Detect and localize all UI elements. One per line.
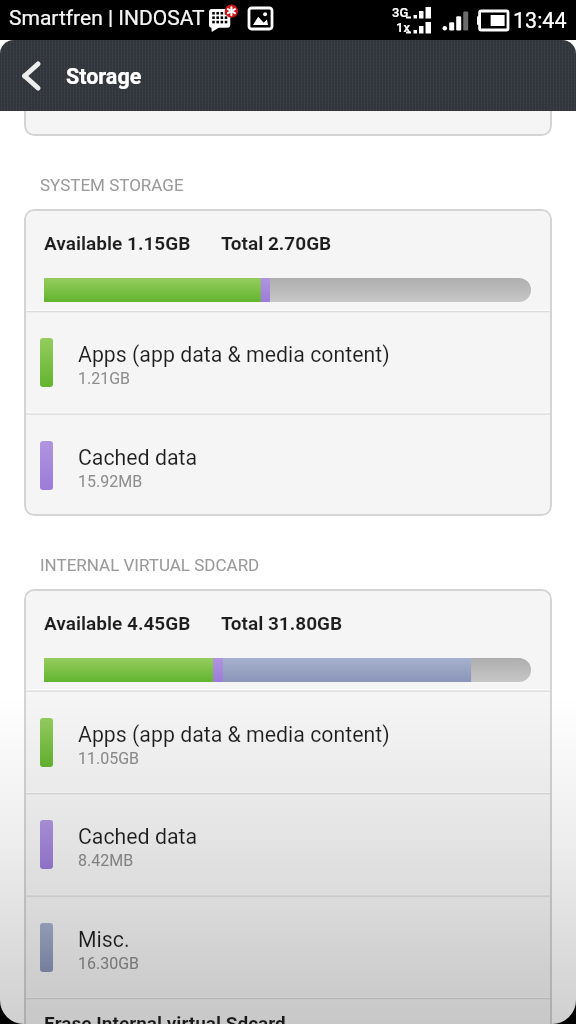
button[interactable]: Apps (app data & media content) [24, 691, 552, 794]
staticText: Available 1.15GB [44, 232, 191, 254]
staticText: INTERNAL VIRTUAL SDCARD [40, 555, 260, 575]
staticText: 1.21GB [78, 369, 131, 388]
staticText: SYSTEM STORAGE [40, 175, 184, 195]
button[interactable]: Cached data [24, 414, 552, 516]
staticText: Misc. [78, 927, 130, 952]
staticText: Smartfren | INDOSAT [9, 6, 205, 31]
staticText: 3G [392, 5, 409, 20]
staticText: 13:44 [513, 8, 567, 33]
button[interactable]: Misc. [24, 896, 552, 999]
staticText: Cached data [78, 824, 198, 849]
staticText: 8.42MB [78, 851, 134, 870]
staticText: Apps (app data & media content) [78, 722, 390, 747]
button[interactable]: Apps (app data & media content) [24, 311, 552, 414]
staticText: Erase Internal virtual Sdcard [44, 1012, 286, 1024]
staticText: 16.30GB [78, 954, 140, 973]
staticText: 15.92MB [78, 472, 143, 491]
staticText: Total 2.70GB [221, 232, 332, 254]
staticText: Available 4.45GB [44, 612, 191, 634]
staticText: Cached data [78, 445, 198, 470]
staticText: 11.05GB [78, 749, 140, 768]
staticText: 1x [396, 20, 410, 35]
button[interactable]: Cached data [24, 793, 552, 896]
staticText: Storage [66, 64, 142, 89]
button[interactable]: Back [0, 40, 62, 111]
staticText: Total 31.80GB [221, 612, 343, 634]
button[interactable]: Erase Internal virtual Sdcard [24, 998, 552, 1024]
staticText: Apps (app data & media content) [78, 342, 390, 367]
